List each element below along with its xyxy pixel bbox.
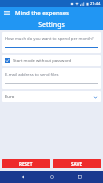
button[interactable]: RESET [2,159,50,168]
button[interactable]: Start mode without password [2,55,101,66]
button[interactable]: SAVE [53,159,101,168]
button[interactable]: How much do you want to spend per month? [2,32,101,53]
staticText: How much do you want to spend per month? [5,36,94,42]
button[interactable]: Open navigation menu [3,9,11,17]
button[interactable]: Recent apps [75,172,85,182]
staticText: E-mail address to send files [5,72,59,78]
staticText: RESET [19,161,33,167]
other: Select currency [92,94,98,100]
staticText: Settings [38,20,65,30]
staticText: Start mode without password [13,58,72,64]
button[interactable]: Back [18,172,28,182]
staticText: SAVE [71,161,83,167]
button[interactable]: Euro [2,91,101,102]
staticText: 21:44 [90,1,101,6]
staticText: Euro [5,94,15,100]
button[interactable]: Home [47,172,57,182]
button[interactable]: E-mail address to send files [2,68,101,89]
staticText: Mind the expenses [15,9,70,17]
